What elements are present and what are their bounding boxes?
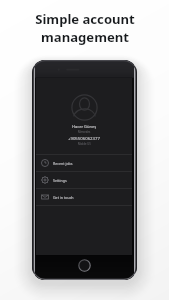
- staticText: Simple account: [35, 10, 135, 28]
- staticText: Get in touch: [53, 195, 74, 200]
- staticText: Recent jobs: [53, 161, 73, 166]
- button[interactable]: Settings: [36, 172, 132, 189]
- button[interactable]: Get in touch: [36, 189, 132, 206]
- button[interactable]: Recent jobs: [36, 155, 132, 172]
- staticText: +905506062377: [68, 135, 100, 141]
- button[interactable]: Home button: [78, 259, 91, 272]
- staticText: Mobile US: [78, 142, 91, 146]
- staticText: management: [41, 28, 129, 46]
- staticText: Settings: [53, 178, 67, 183]
- staticText: Hacer Güneş: [72, 124, 97, 129]
- staticText: Mercedes: [78, 130, 91, 134]
